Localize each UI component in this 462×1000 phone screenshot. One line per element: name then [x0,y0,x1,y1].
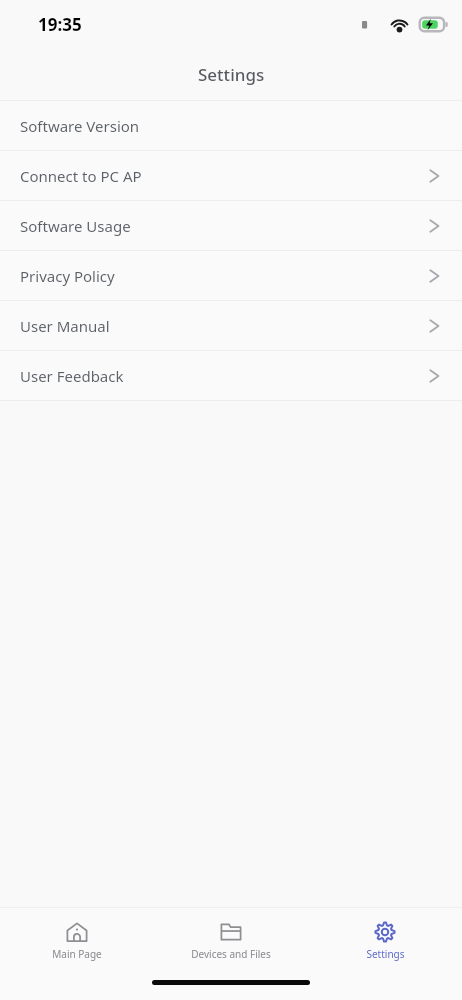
staticText: Settings [198,63,265,86]
staticText: Main Page [52,947,102,961]
staticText: 19:35 [38,13,82,36]
button[interactable]: Devices and Files [154,914,308,961]
staticText: Settings [366,947,405,961]
staticText: User Manual [20,316,429,336]
button[interactable]: User Feedback [0,351,462,400]
button[interactable]: User Manual [0,301,462,350]
staticText: Software Version [20,116,440,136]
staticText: Devices and Files [191,947,271,961]
button[interactable]: Connect to PC AP [0,151,462,200]
staticText: Privacy Policy [20,266,429,286]
staticText: Connect to PC AP [20,166,429,186]
button[interactable]: Privacy Policy [0,251,462,300]
button[interactable]: Settings [308,914,462,961]
staticText: User Feedback [20,366,429,386]
button[interactable]: Software Usage [0,201,462,250]
button[interactable]: Software Version [0,101,462,150]
button[interactable]: Main Page [0,914,154,961]
staticText: Software Usage [20,216,429,236]
